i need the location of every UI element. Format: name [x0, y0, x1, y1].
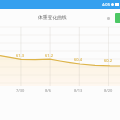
staticText: 8/6: [45, 88, 52, 93]
staticText: 体重变化曲线: [38, 14, 67, 20]
staticText: 7/30: [16, 88, 25, 93]
button[interactable]: Add record: [115, 13, 120, 23]
staticText: 60.2: [104, 58, 112, 63]
staticText: 61.3: [16, 53, 24, 58]
button[interactable]: More options: [105, 15, 111, 21]
staticText: 8/20: [104, 88, 113, 93]
staticText: 4:05: [102, 2, 110, 7]
staticText: 60.4: [74, 57, 82, 62]
staticText: 8/13: [74, 88, 83, 93]
staticText: 61.2: [45, 53, 53, 58]
